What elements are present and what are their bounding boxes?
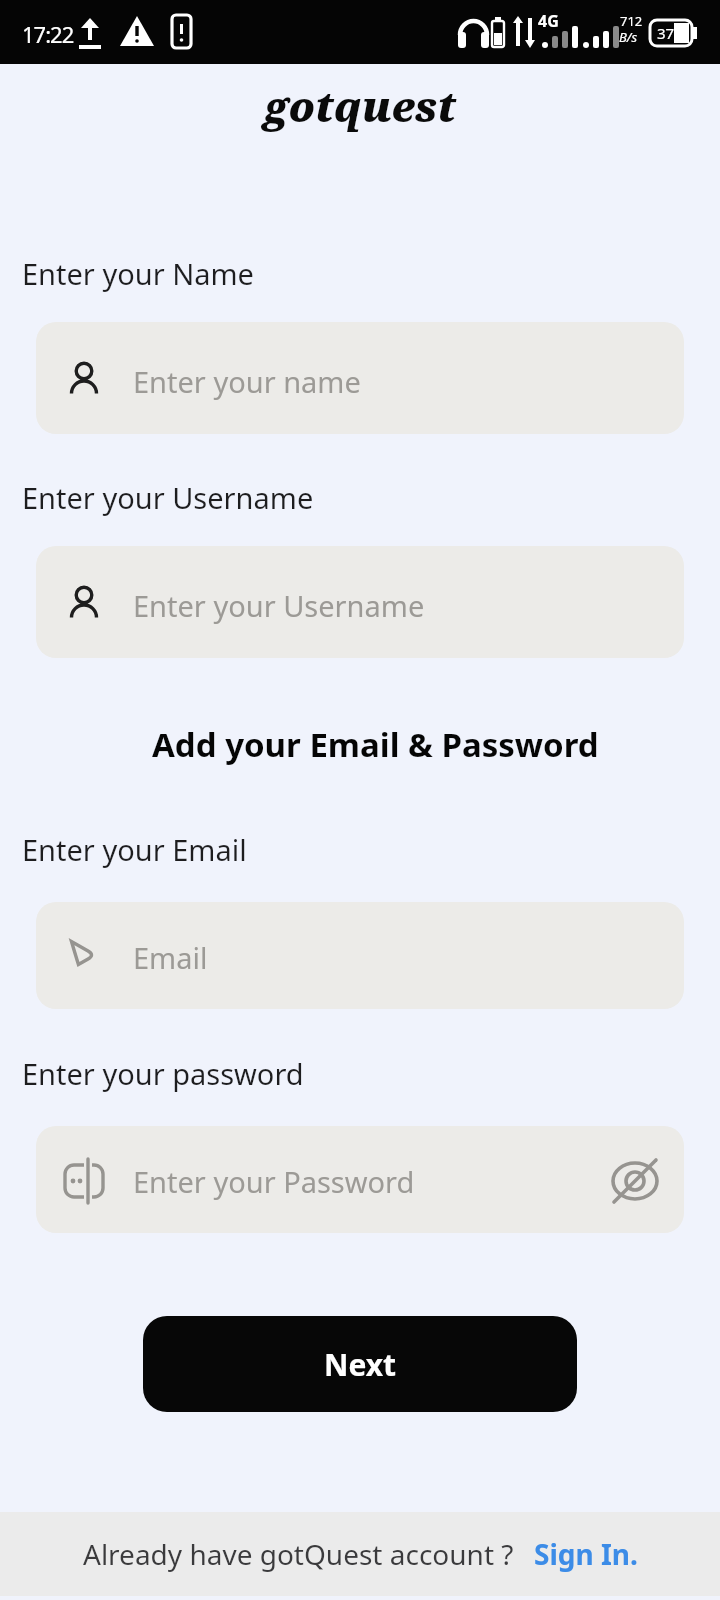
staticText: Email [133,938,208,977]
staticText: Add your Email & Password [152,722,599,767]
staticText: Enter your Password [133,1162,415,1201]
staticText: Enter your Name [22,254,254,293]
staticText: Enter your name [133,362,361,401]
button[interactable] [36,1126,684,1233]
staticText: 712 [620,12,643,30]
button[interactable] [36,902,684,1009]
staticText: Next [324,1344,397,1385]
staticText: Enter your Username [133,586,425,625]
staticText: B/s [619,28,638,46]
staticText: Enter your password [22,1054,304,1093]
staticText: 4G [538,10,559,32]
staticText: gotquest [264,78,456,134]
button[interactable] [36,322,684,434]
staticText: Already have gotQuest account ? [83,1535,514,1573]
button[interactable] [36,546,684,658]
staticText: Enter your Username [22,478,314,517]
button[interactable]: Next [143,1316,577,1412]
staticText: 17:22 [22,19,74,49]
button[interactable]: Sign In. [534,1535,638,1573]
staticText: 37 [657,23,675,43]
staticText: Enter your Email [22,830,247,869]
